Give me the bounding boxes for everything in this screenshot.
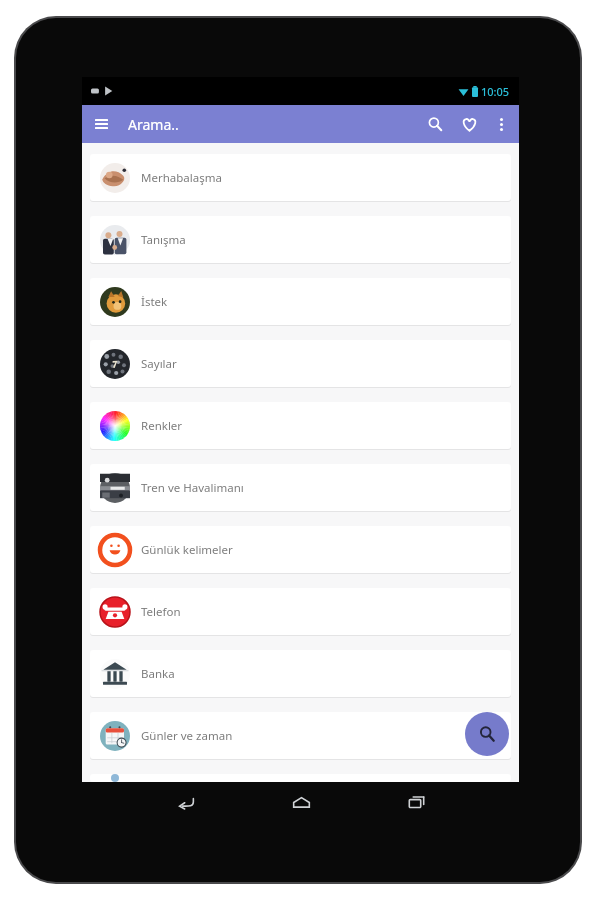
- button[interactable]: More options: [486, 109, 516, 139]
- button[interactable]: Recent apps: [396, 782, 436, 822]
- button[interactable]: Banka: [90, 650, 511, 697]
- button[interactable]: Favorites: [452, 107, 486, 141]
- staticText: Renkler: [141, 418, 183, 434]
- button[interactable]: Günlük kelimeler: [90, 526, 511, 573]
- button[interactable]: Search: [465, 712, 509, 756]
- staticText: İstek: [141, 294, 168, 310]
- button[interactable]: Tren ve Havalimanı: [90, 464, 511, 511]
- button[interactable]: [90, 774, 511, 782]
- staticText: Banka: [141, 666, 175, 682]
- button[interactable]: Tanışma: [90, 216, 511, 263]
- staticText: Günler ve zaman: [141, 728, 233, 744]
- button[interactable]: Search: [418, 107, 452, 141]
- staticText: 10:05: [481, 84, 510, 99]
- button[interactable]: Home: [281, 782, 321, 822]
- staticText: Sayılar: [141, 356, 177, 372]
- button[interactable]: Renkler: [90, 402, 511, 449]
- staticText: Merhabalaşma: [141, 170, 222, 186]
- staticText: Tren ve Havalimanı: [141, 480, 244, 496]
- button[interactable]: İstek: [90, 278, 511, 325]
- button[interactable]: Günler ve zaman: [90, 712, 511, 759]
- staticText: Arama..: [128, 115, 179, 134]
- button[interactable]: Back: [166, 782, 206, 822]
- button[interactable]: Sayılar: [90, 340, 511, 387]
- button[interactable]: Merhabalaşma: [90, 154, 511, 201]
- staticText: Telefon: [141, 604, 181, 620]
- button[interactable]: Telefon: [90, 588, 511, 635]
- staticText: Günlük kelimeler: [141, 542, 233, 558]
- staticText: Tanışma: [141, 232, 186, 248]
- button[interactable]: Open navigation drawer: [82, 105, 120, 143]
